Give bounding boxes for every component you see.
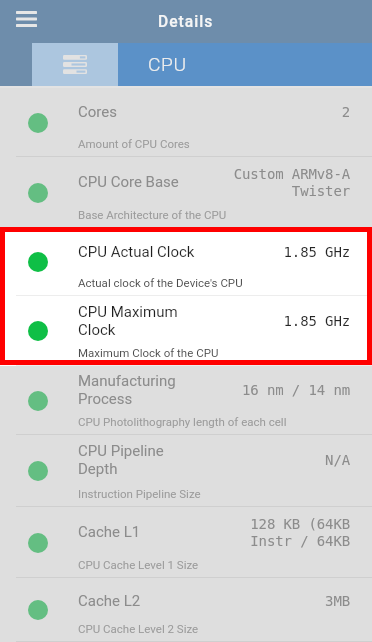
staticText: Base Architecture of the CPU bbox=[78, 208, 227, 221]
staticText: CPU Maximum Clock bbox=[78, 303, 232, 339]
staticText: Custom ARMv8-A Twister bbox=[233, 166, 350, 199]
staticText: N/A bbox=[325, 452, 350, 468]
button[interactable]: CPU Maximum Clock bbox=[0, 296, 372, 366]
button[interactable]: Cache L1 bbox=[0, 507, 372, 578]
staticText: Actual clock of the Device's CPU bbox=[78, 276, 243, 289]
button[interactable]: Hardware tab bbox=[32, 43, 118, 86]
staticText: Details bbox=[158, 13, 214, 31]
staticText: CPU Photolithography length of each cell bbox=[78, 415, 287, 428]
staticText: 128 KB (64KB Instr / 64KB bbox=[250, 516, 350, 549]
staticText: CPU Pipeline Depth bbox=[78, 442, 232, 478]
button[interactable]: Manufacturing Process bbox=[0, 366, 372, 435]
button[interactable]: CPU Pipeline Depth bbox=[0, 435, 372, 507]
button[interactable]: CPU bbox=[118, 43, 372, 86]
staticText: CPU Actual Clock bbox=[78, 243, 232, 261]
staticText: 3MB bbox=[325, 593, 350, 609]
staticText: 1.85 GHz bbox=[283, 244, 350, 260]
button[interactable]: CPU Core Base bbox=[0, 157, 372, 228]
staticText: CPU Core Base bbox=[78, 173, 232, 191]
staticText: Instruction Pipeline Size bbox=[78, 487, 201, 500]
staticText: CPU Cache Level 2 Size bbox=[78, 622, 199, 635]
staticText: 1.85 GHz bbox=[283, 313, 350, 329]
staticText: 2 bbox=[341, 104, 350, 120]
staticText: Cache L2 bbox=[78, 592, 232, 610]
staticText: 16 nm / 14 nm bbox=[241, 382, 350, 398]
staticText: Cache L1 bbox=[78, 523, 232, 541]
button[interactable]: CPU Actual Clock bbox=[0, 228, 372, 296]
button[interactable]: Cache L2 bbox=[0, 578, 372, 642]
staticText: Manufacturing Process bbox=[78, 372, 232, 408]
staticText: Amount of CPU Cores bbox=[78, 137, 190, 150]
button[interactable]: Open navigation menu bbox=[6, 0, 46, 37]
staticText: Maximum Clock of the CPU bbox=[78, 346, 219, 359]
button[interactable]: Cores bbox=[0, 88, 372, 157]
staticText: Cores bbox=[78, 103, 232, 121]
staticText: CPU Cache Level 1 Size bbox=[78, 558, 199, 571]
staticText: CPU bbox=[148, 53, 187, 76]
